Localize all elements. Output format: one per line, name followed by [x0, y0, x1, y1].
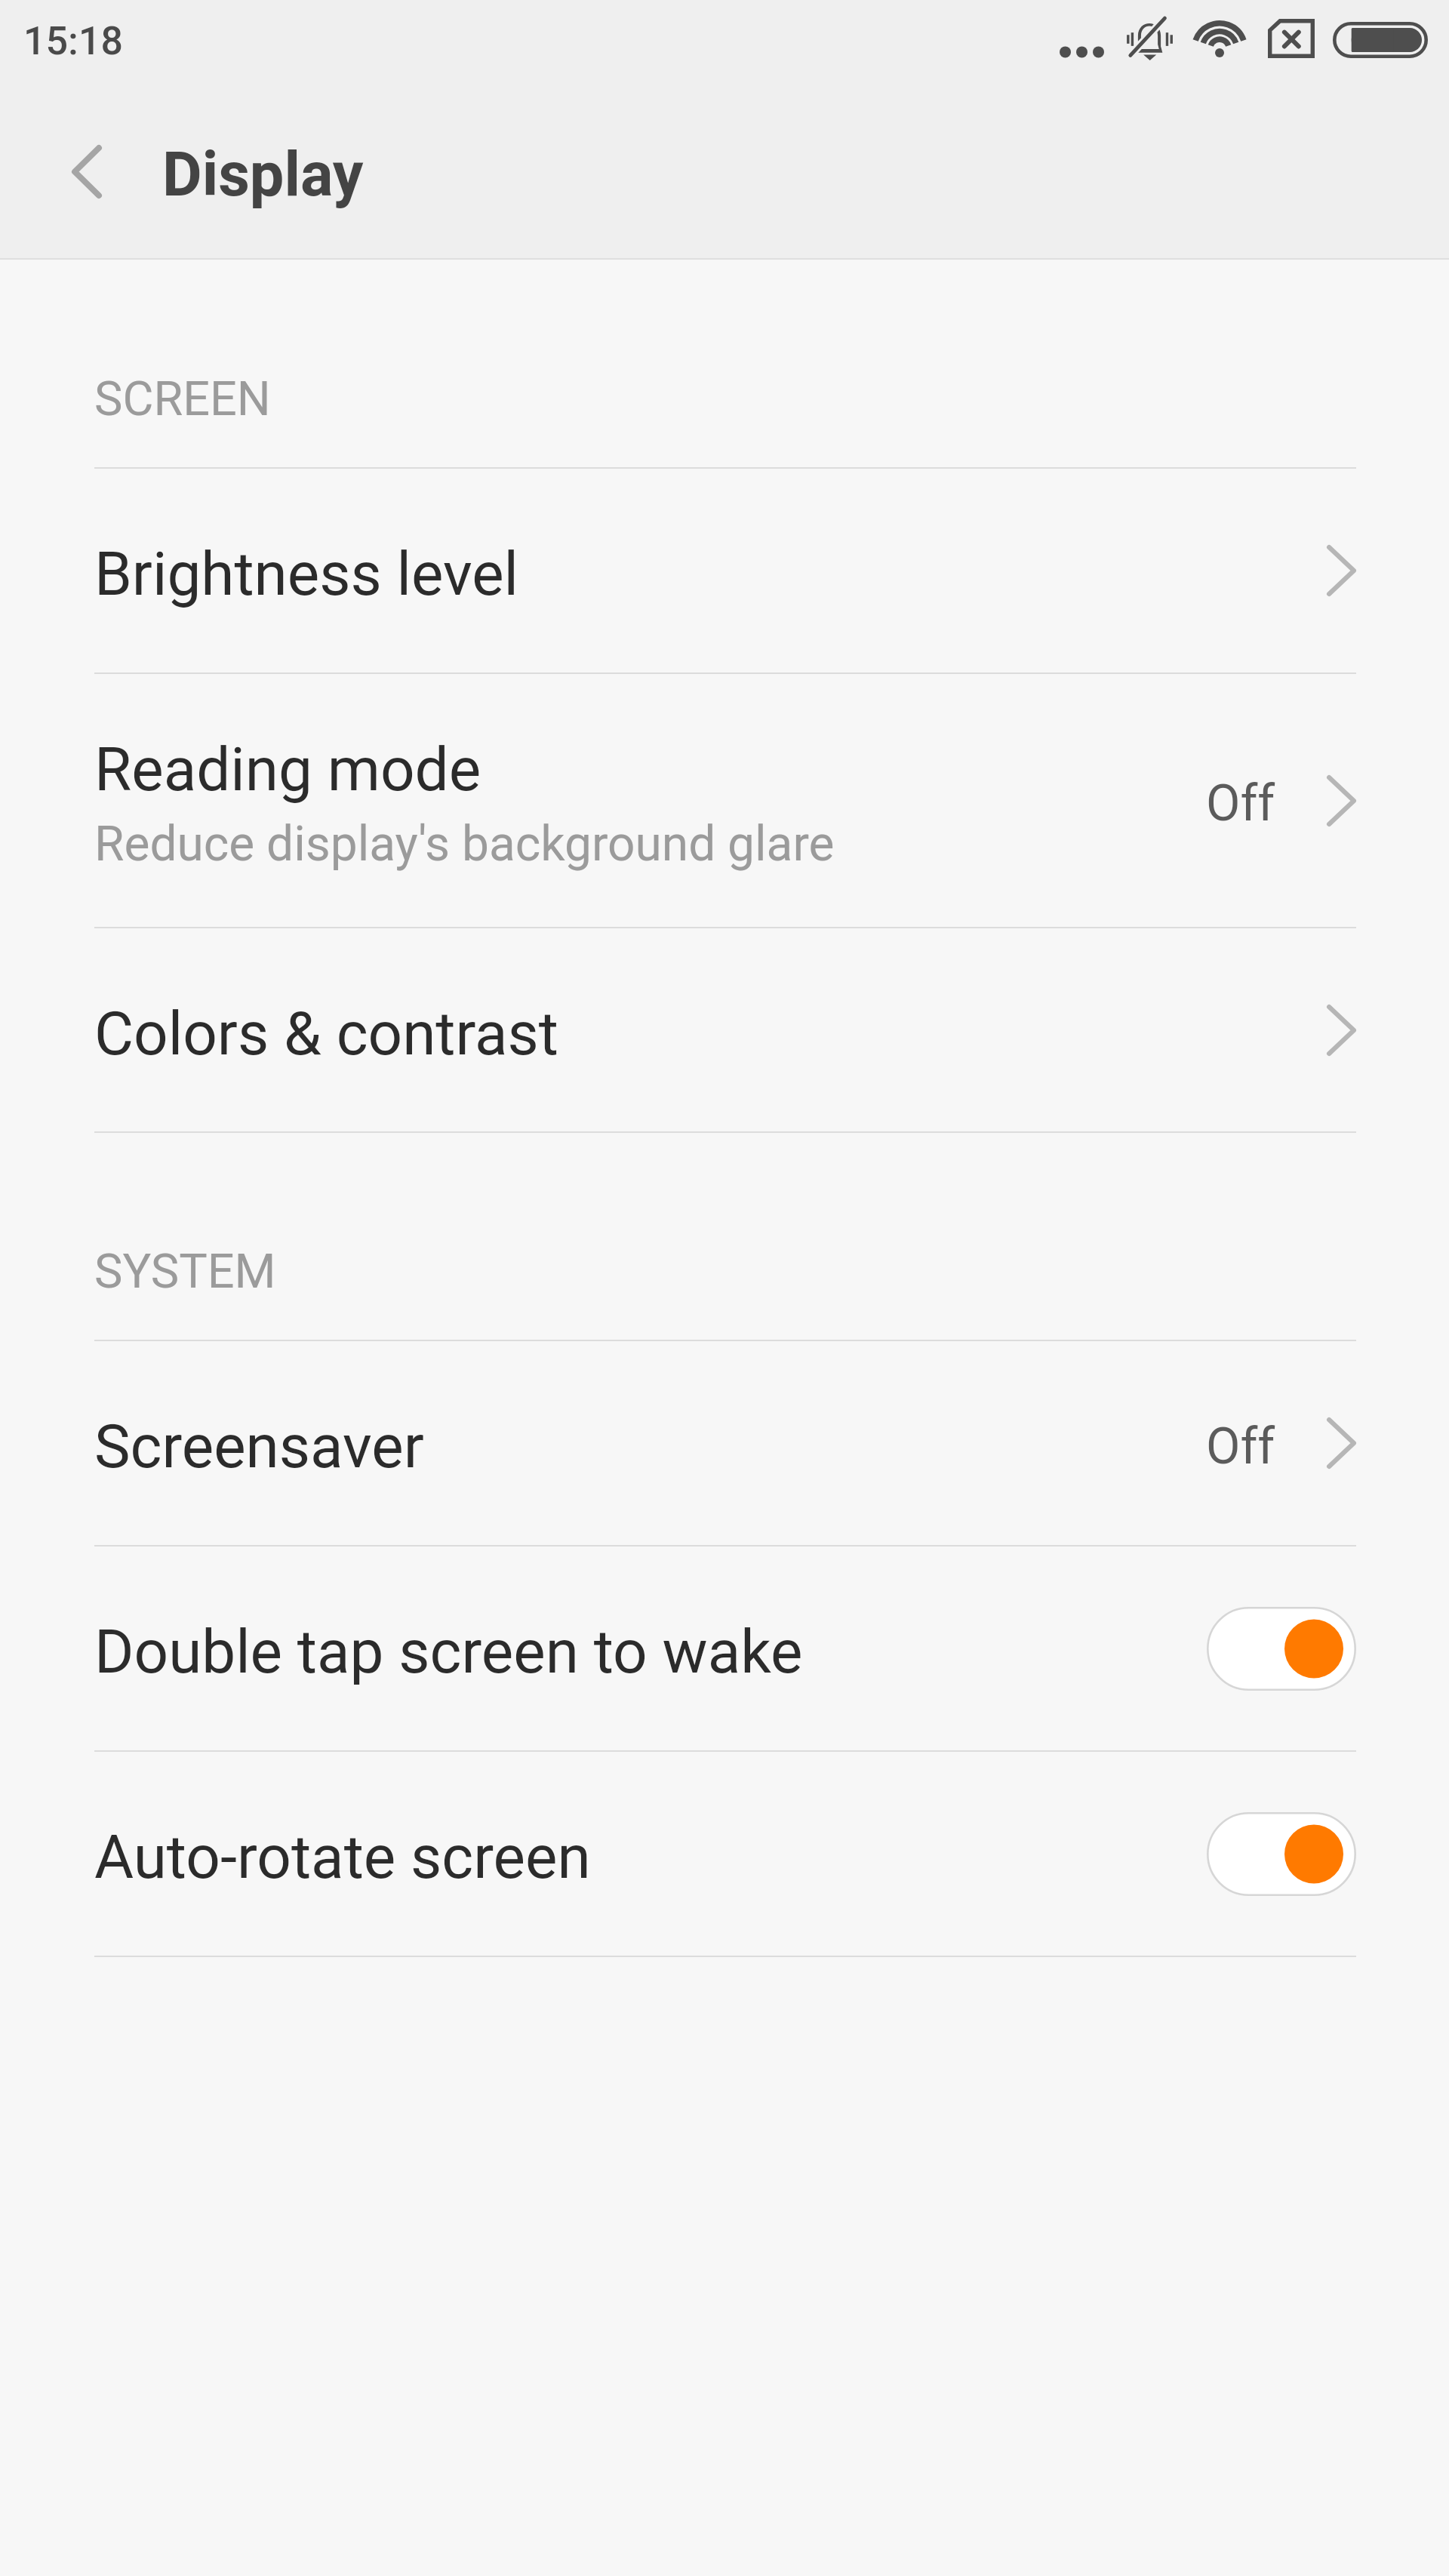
- button[interactable]: Screensaver: [0, 1341, 1449, 1547]
- staticText: Brightness level: [94, 539, 519, 610]
- staticText: Off: [1206, 774, 1275, 833]
- button[interactable]: Auto-rotate screen, on: [1207, 1812, 1356, 1896]
- button[interactable]: Colors & contrast: [0, 928, 1449, 1133]
- button[interactable]: Back: [38, 107, 136, 235]
- button[interactable]: Brightness level: [0, 469, 1449, 674]
- staticText: 15:18: [23, 18, 124, 64]
- button[interactable]: Auto-rotate screen: [0, 1752, 1449, 1957]
- staticText: Reduce display's background glare: [94, 816, 835, 873]
- button[interactable]: Reading mode: [0, 674, 1449, 928]
- staticText: Display: [162, 139, 364, 211]
- staticText: Screensaver: [94, 1411, 424, 1482]
- staticText: SCREEN: [94, 371, 271, 427]
- button[interactable]: Double tap screen to wake: [0, 1547, 1449, 1752]
- staticText: Off: [1206, 1417, 1275, 1476]
- staticText: Colors & contrast: [94, 999, 558, 1069]
- staticText: Auto-rotate screen: [94, 1822, 1207, 1893]
- button[interactable]: Double tap screen to wake, on: [1207, 1607, 1356, 1691]
- staticText: SYSTEM: [94, 1244, 276, 1300]
- staticText: Double tap screen to wake: [94, 1617, 1207, 1688]
- staticText: Reading mode: [94, 734, 481, 805]
